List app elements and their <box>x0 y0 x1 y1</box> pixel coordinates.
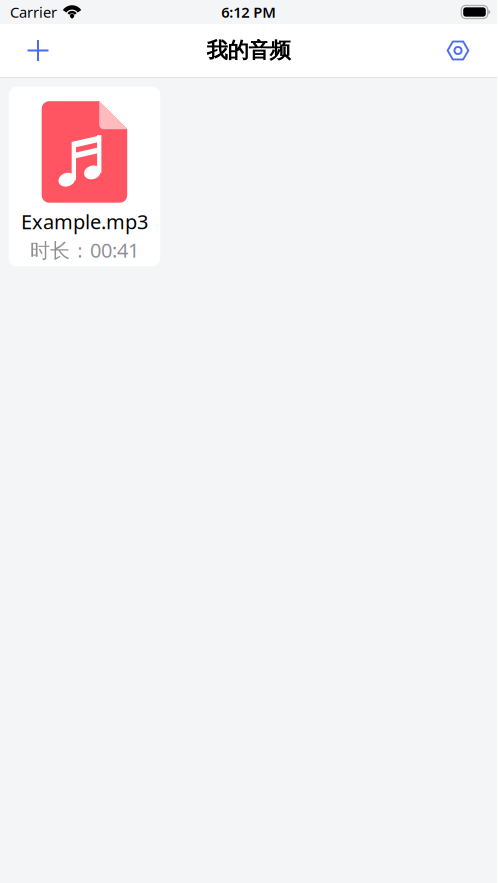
staticText: Example.mp3 <box>21 208 148 235</box>
button[interactable]: Add audio <box>16 28 60 72</box>
staticText: 时长：00:41 <box>30 237 139 263</box>
staticText: Carrier <box>10 2 57 22</box>
staticText: 6:12 PM <box>221 2 276 22</box>
button[interactable]: Settings <box>436 28 480 72</box>
staticText: 我的音频 <box>206 37 290 64</box>
button[interactable]: Example.mp3 <box>9 87 160 266</box>
